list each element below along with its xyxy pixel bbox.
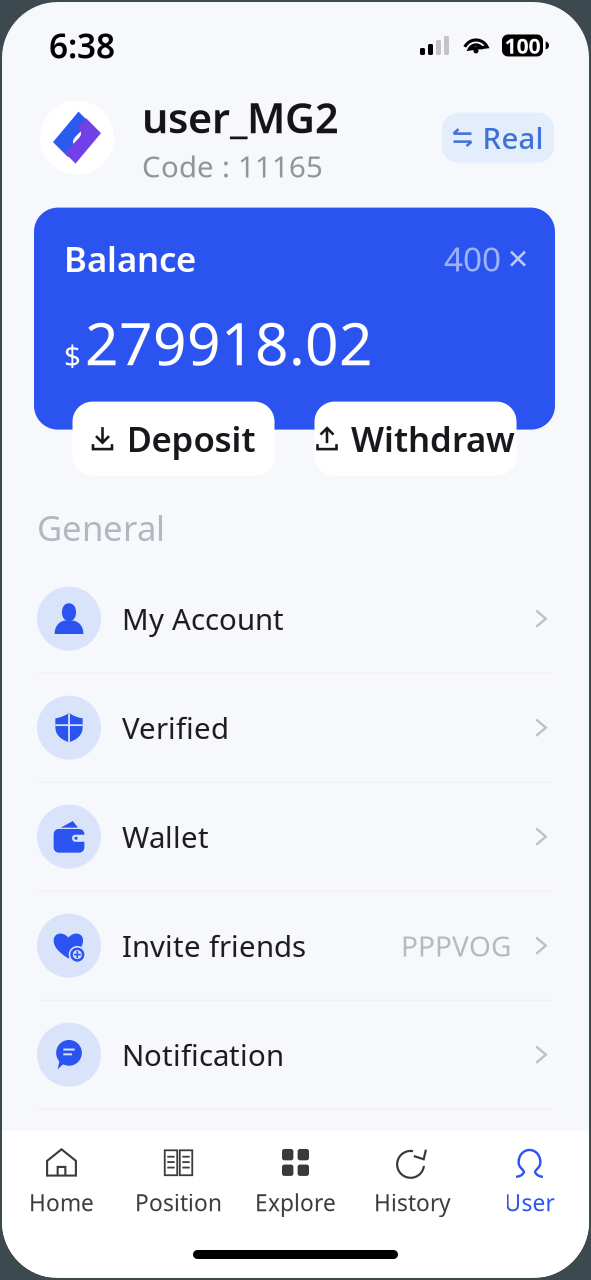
staticText: User xyxy=(504,1187,554,1217)
button[interactable]: Position xyxy=(120,1145,237,1219)
button[interactable]: History xyxy=(354,1145,471,1219)
staticText: Wallet xyxy=(122,817,209,856)
button[interactable]: Real xyxy=(442,113,554,163)
staticText: Deposit xyxy=(126,416,255,462)
button[interactable]: My Account xyxy=(2,565,589,673)
button[interactable]: Home xyxy=(3,1145,120,1219)
staticText: 279918.02 xyxy=(85,304,373,382)
staticText: Code : 11165 xyxy=(142,147,323,186)
staticText: Explore xyxy=(255,1187,336,1217)
staticText: Notification xyxy=(122,1035,284,1074)
staticText: My Account xyxy=(122,599,284,638)
button[interactable]: Notification xyxy=(2,1001,589,1109)
button[interactable]: Explore xyxy=(237,1145,354,1219)
staticText: Position xyxy=(135,1187,222,1217)
staticText: Withdraw xyxy=(351,416,515,462)
button[interactable]: User xyxy=(471,1145,588,1219)
staticText: History xyxy=(374,1187,451,1217)
staticText: General xyxy=(37,505,165,551)
staticText: 100 xyxy=(504,31,540,60)
staticText: PPPVOG xyxy=(401,927,511,964)
staticText: 6:38 xyxy=(49,23,115,68)
staticText: Verified xyxy=(122,708,229,747)
staticText: 400 xyxy=(444,236,501,281)
button[interactable]: Withdraw xyxy=(314,402,516,476)
button[interactable]: Verified xyxy=(2,674,589,782)
staticText: Home xyxy=(29,1187,94,1217)
button[interactable]: Invite friends xyxy=(2,892,589,1000)
button[interactable]: Wallet xyxy=(2,783,589,891)
button[interactable]: Deposit xyxy=(72,402,274,476)
staticText: Balance xyxy=(64,236,196,282)
staticText: Invite friends xyxy=(122,926,306,965)
staticText: Real xyxy=(482,118,543,157)
staticText: user_MG2 xyxy=(142,90,339,145)
staticText: $ xyxy=(64,336,81,375)
